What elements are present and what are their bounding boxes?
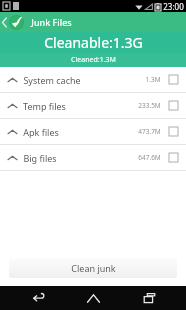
button[interactable]: Clean junk xyxy=(9,258,177,278)
staticText: Cleaned:1.3M xyxy=(71,55,116,65)
button[interactable]: System cache xyxy=(0,67,186,92)
staticText: 647.6M xyxy=(138,153,161,162)
staticText: Apk files xyxy=(23,126,59,138)
button[interactable]: Apk files xyxy=(0,119,186,144)
staticText: 23:00 xyxy=(163,1,184,12)
button[interactable]: Home xyxy=(75,286,111,310)
button[interactable]: Back xyxy=(20,286,56,310)
staticText: Clean junk xyxy=(71,262,116,274)
button[interactable]: Big files xyxy=(0,145,186,170)
staticText: Temp files xyxy=(23,100,66,112)
staticText: Junk Files xyxy=(31,16,72,28)
button[interactable]: Back xyxy=(0,15,26,30)
button[interactable]: Select Temp files xyxy=(168,100,179,111)
button[interactable]: Select Big files xyxy=(168,152,179,163)
staticText: 473.7M xyxy=(138,127,161,136)
staticText: System cache xyxy=(23,74,81,86)
staticText: 1.3M xyxy=(145,75,161,84)
staticText: 233.5M xyxy=(138,101,161,110)
staticText: Cleanable:1.3G xyxy=(44,33,143,52)
staticText: Big files xyxy=(23,152,57,164)
button[interactable]: Temp files xyxy=(0,93,186,118)
button[interactable]: Select System cache xyxy=(168,74,179,85)
button[interactable]: Select Apk files xyxy=(168,126,179,137)
button[interactable]: Recent apps xyxy=(131,286,167,310)
